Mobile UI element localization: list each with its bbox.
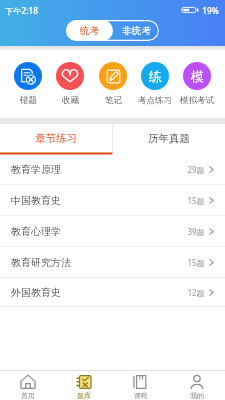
staticText: 模拟考试 xyxy=(180,95,214,106)
staticText: 题库 xyxy=(77,391,91,400)
staticText: 29题 xyxy=(187,164,205,175)
staticText: 15题 xyxy=(187,195,205,206)
staticText: 教育学原理 xyxy=(11,163,61,176)
staticText: 模 xyxy=(191,68,204,84)
staticText: 章节练习 xyxy=(35,132,77,145)
staticText: 教育心理学 xyxy=(11,225,61,238)
button[interactable]: 我的 xyxy=(177,371,217,400)
staticText: 收藏 xyxy=(62,95,79,106)
button[interactable]: 章节练习 xyxy=(0,124,112,153)
button[interactable]: 非统考 xyxy=(113,20,159,41)
button[interactable]: 练 xyxy=(134,62,176,106)
staticText: 练 xyxy=(149,68,162,84)
button[interactable]: 笔记 xyxy=(92,62,134,106)
staticText: 12题 xyxy=(187,287,205,298)
staticText: 教育研究方法 xyxy=(11,256,71,269)
staticText: 非统考 xyxy=(122,25,151,37)
button[interactable]: 错题 xyxy=(7,62,49,106)
button[interactable]: 教育研究方法 xyxy=(0,247,225,278)
staticText: 错题 xyxy=(20,95,37,106)
staticText: 外国教育史 xyxy=(11,286,61,299)
button[interactable]: 中国教育史 xyxy=(0,185,225,216)
button[interactable]: 外国教育史 xyxy=(0,278,225,307)
staticText: 首页 xyxy=(21,391,35,400)
button[interactable]: 题库 xyxy=(64,371,104,400)
button[interactable]: 课程 xyxy=(121,371,161,400)
button[interactable]: 模 xyxy=(176,62,218,106)
staticText: 笔记 xyxy=(105,95,122,106)
staticText: 我的 xyxy=(190,391,204,400)
staticText: 下午2:18 xyxy=(5,5,38,16)
button[interactable]: 教育心理学 xyxy=(0,216,225,247)
button[interactable]: 统考 xyxy=(66,20,113,41)
button[interactable]: 历年真题 xyxy=(112,124,225,153)
button[interactable]: 收藏 xyxy=(49,62,91,106)
staticText: 19% xyxy=(202,5,219,16)
staticText: 39题 xyxy=(187,226,205,237)
staticText: 课程 xyxy=(134,391,148,400)
staticText: 中国教育史 xyxy=(11,194,61,207)
button[interactable]: 首页 xyxy=(8,371,48,400)
staticText: 考点练习 xyxy=(138,95,172,106)
staticText: 历年真题 xyxy=(148,132,190,145)
button[interactable]: 教育学原理 xyxy=(0,154,225,185)
staticText: 统考 xyxy=(80,25,99,37)
staticText: 15题 xyxy=(187,257,205,268)
